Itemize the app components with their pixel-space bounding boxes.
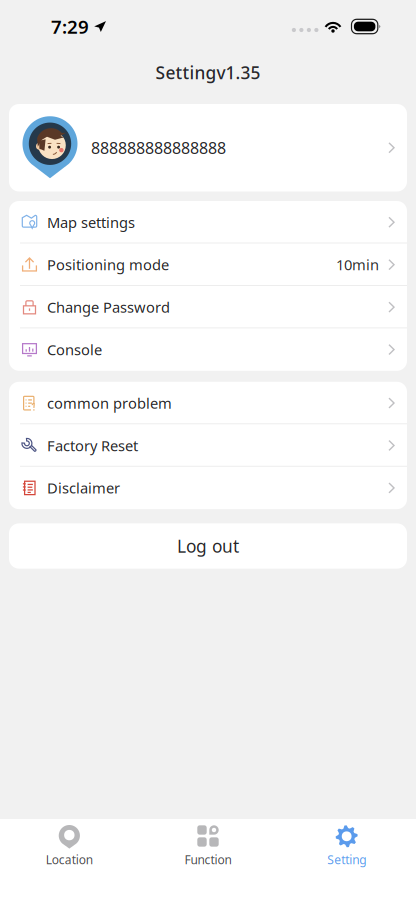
button[interactable]: Disclaimer [9,467,407,509]
staticText: Setting [327,852,366,867]
button[interactable]: common problem [9,382,407,424]
staticText: 10min [336,255,379,274]
staticText: Settingv1.35 [155,61,260,84]
button[interactable]: Location [0,815,139,900]
staticText: 888888888888888 [91,137,226,158]
button[interactable]: 888888888888888 [0,104,416,191]
staticText: Map settings [47,212,135,232]
button[interactable]: Log out [0,523,416,569]
button[interactable]: Change Password [9,286,407,328]
button[interactable]: Function [139,815,277,900]
staticText: Factory Reset [47,436,138,455]
button[interactable]: Console [9,328,407,371]
staticText: 7:29 [51,14,89,39]
staticText: Log out [177,534,239,557]
staticText: Disclaimer [47,478,120,498]
button[interactable]: Map settings [9,201,407,243]
staticText: Positioning mode [47,255,169,274]
staticText: Console [47,340,102,359]
staticText: Function [184,852,231,867]
staticText: Change Password [47,297,170,317]
button[interactable]: Factory Reset [9,424,407,467]
button[interactable]: Setting [277,815,416,900]
button[interactable]: Positioning mode [9,243,407,286]
staticText: Location [46,852,93,867]
staticText: common problem [47,393,172,413]
